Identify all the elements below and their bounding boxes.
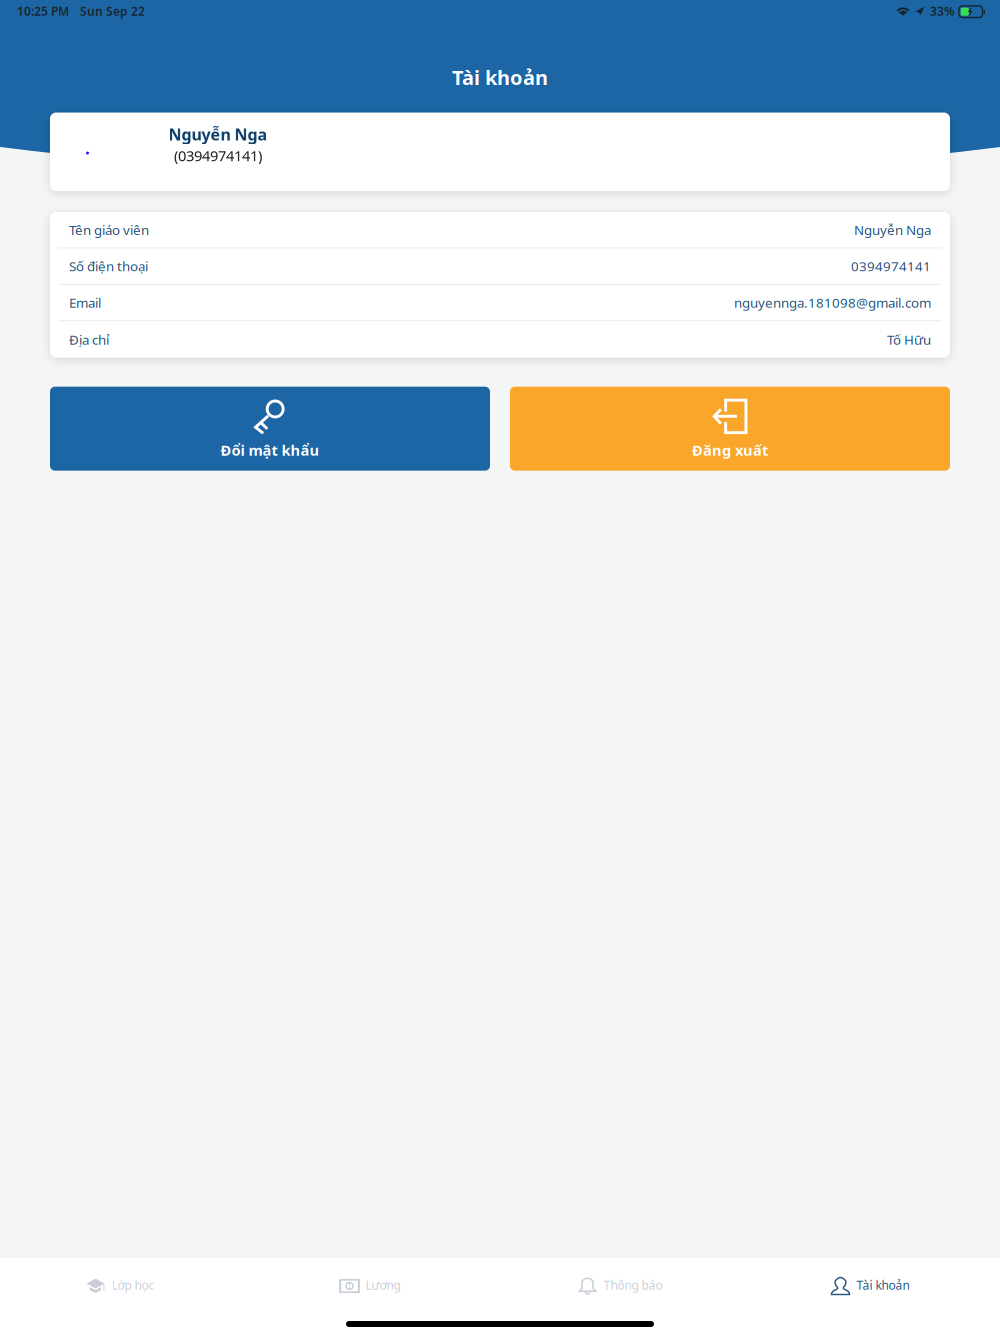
staticText: Đăng xuất <box>692 440 768 460</box>
staticText: 10:25 PM <box>17 3 69 19</box>
staticText: Sun Sep 22 <box>80 3 145 19</box>
staticText: Tố Hữu <box>887 331 931 348</box>
staticText: Địa chỉ <box>69 331 109 348</box>
staticText: Tên giáo viên <box>69 221 149 239</box>
staticText: nguyennga.181098@gmail.com <box>734 294 931 311</box>
staticText: Tài khoản <box>856 1277 909 1293</box>
staticText: Lớp học <box>111 1277 154 1293</box>
button[interactable]: Lớp học <box>0 1259 245 1311</box>
staticText: 0394974141 <box>851 257 931 275</box>
staticText: Nguyễn Nga <box>854 221 931 239</box>
staticText: Đổi mật khẩu <box>220 440 319 460</box>
button[interactable]: Đổi mật khẩu <box>50 387 490 471</box>
button[interactable]: Đăng xuất <box>510 387 950 471</box>
button[interactable]: Tài khoản <box>745 1259 995 1311</box>
staticText: Nguyễn Nga <box>168 124 267 145</box>
staticText: (0394974141) <box>174 146 262 165</box>
staticText: 1 <box>347 1281 352 1291</box>
staticText: Số điện thoại <box>69 257 148 275</box>
staticText: Thông báo <box>603 1277 662 1293</box>
staticText: Lương <box>365 1277 400 1293</box>
staticText: 33% <box>930 3 955 19</box>
button[interactable]: 1 <box>245 1259 495 1311</box>
staticText: Tài khoản <box>452 64 548 91</box>
button[interactable]: Thông báo <box>495 1259 745 1311</box>
staticText: Email <box>69 294 101 311</box>
